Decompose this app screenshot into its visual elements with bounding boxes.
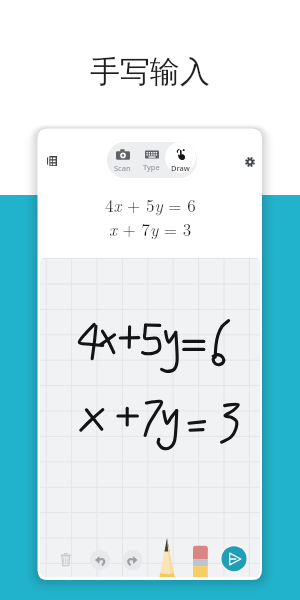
- staticText: 4x + 5y = 6: [105, 193, 196, 217]
- button[interactable]: Scan: [107, 144, 140, 175]
- staticText: 手写输入: [90, 53, 210, 91]
- button[interactable]: Settings: [239, 151, 261, 173]
- button[interactable]: Delete: [55, 550, 77, 572]
- button[interactable]: Undo: [90, 550, 111, 571]
- button[interactable]: Eraser: [192, 546, 206, 560]
- button[interactable]: History: [40, 149, 64, 173]
- button[interactable]: Send: [222, 545, 248, 571]
- staticText: x + 7y = 3: [109, 217, 192, 239]
- staticText: Draw: [171, 163, 190, 173]
- staticText: Scan: [114, 163, 131, 173]
- staticText: Type: [143, 162, 160, 172]
- button[interactable]: Draw: [163, 144, 197, 175]
- button[interactable]: Redo: [122, 550, 143, 571]
- button[interactable]: Pen: [158, 536, 178, 556]
- button[interactable]: Type: [134, 144, 169, 175]
